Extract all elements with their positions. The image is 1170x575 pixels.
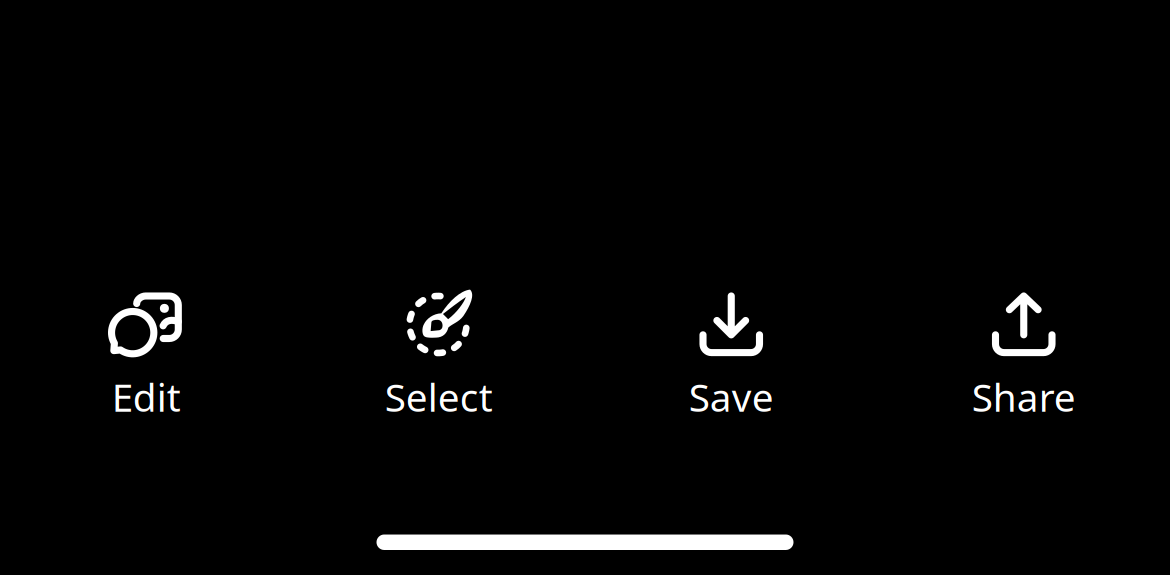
staticText: Share — [972, 371, 1076, 422]
staticText: Edit — [112, 371, 181, 422]
button[interactable]: Save — [585, 288, 877, 422]
staticText: Save — [689, 371, 774, 422]
staticText: Select — [385, 371, 493, 422]
button[interactable]: Share — [877, 288, 1170, 422]
button[interactable]: Edit — [0, 288, 292, 422]
button[interactable]: Select — [292, 288, 585, 422]
